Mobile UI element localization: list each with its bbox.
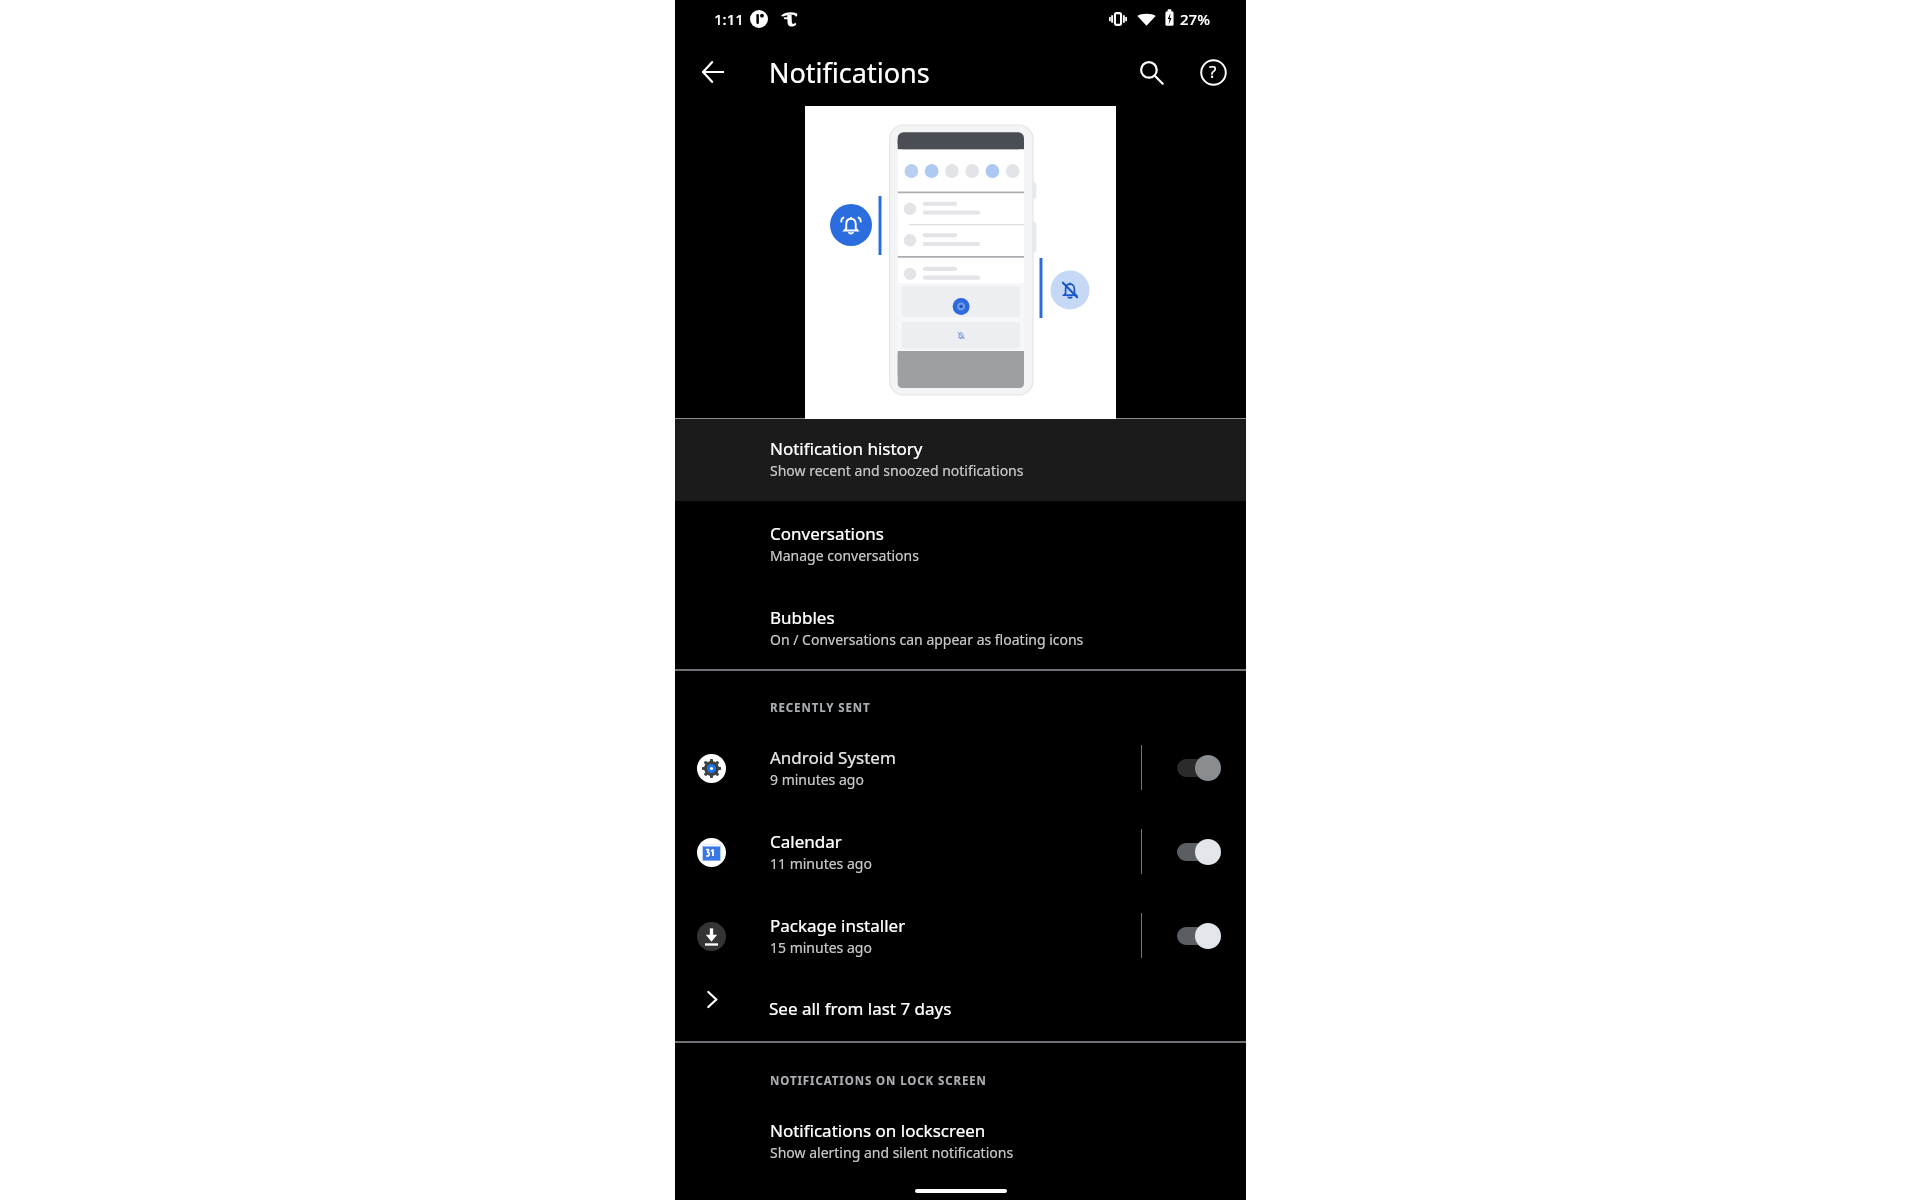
staticText: 11 minutes ago — [770, 854, 872, 873]
staticText: Package installer — [770, 914, 906, 937]
staticText: Conversations — [770, 522, 884, 545]
staticText: On / Conversations can appear as floatin… — [770, 630, 1084, 649]
staticText: Show alerting and silent notifications — [770, 1143, 1014, 1162]
button[interactable]: Conversations — [675, 504, 1246, 588]
staticText: Show recent and snoozed notifications — [770, 461, 1024, 480]
staticText: Notification history — [770, 437, 923, 460]
button[interactable]: Back — [689, 48, 737, 96]
staticText: Calendar — [770, 830, 842, 853]
button[interactable]: See all from last 7 days — [675, 979, 1246, 1033]
button[interactable]: Help — [1189, 48, 1237, 96]
button[interactable]: Bubbles — [675, 588, 1246, 645]
staticText: Android System — [770, 746, 896, 769]
button[interactable]: Package installer — [675, 898, 1246, 970]
staticText: 27% — [1180, 9, 1210, 29]
button[interactable]: Toggle Package installer notifications — [1165, 909, 1246, 963]
button[interactable]: Toggle Calendar notifications — [1165, 825, 1246, 879]
button[interactable]: Android System — [675, 730, 1246, 802]
staticText: Notifications — [769, 54, 930, 91]
staticText: Bubbles — [770, 606, 835, 629]
staticText: Notifications on lockscreen — [770, 1119, 986, 1142]
button[interactable]: Notification history — [675, 419, 1246, 501]
staticText: 15 minutes ago — [770, 938, 872, 957]
button[interactable]: Search — [1127, 48, 1175, 96]
staticText: 9 minutes ago — [770, 770, 864, 789]
staticText: ? — [1209, 60, 1217, 83]
button[interactable]: Notifications on lockscreen — [675, 1101, 1246, 1173]
staticText: See all from last 7 days — [769, 997, 952, 1020]
staticText: NOTIFICATIONS ON LOCK SCREEN — [770, 1073, 987, 1089]
staticText: Manage conversations — [770, 546, 919, 565]
button[interactable]: Toggle Android System notifications — [1165, 741, 1246, 795]
button[interactable]: Calendar — [675, 814, 1246, 886]
staticText: 1:11 — [714, 9, 744, 29]
staticText: RECENTLY SENT — [770, 700, 871, 716]
